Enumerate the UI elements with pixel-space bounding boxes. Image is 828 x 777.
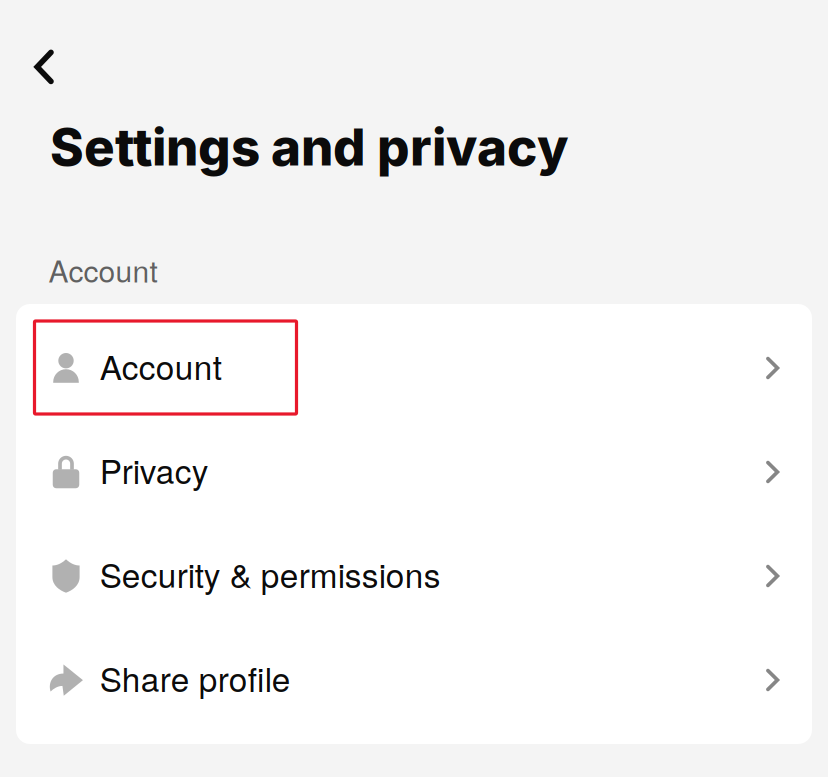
staticText: Settings and privacy xyxy=(50,116,569,178)
staticText: Security & permissions xyxy=(100,550,441,597)
button[interactable]: Security & permissions xyxy=(16,524,812,628)
staticText: Privacy xyxy=(100,446,209,493)
staticText: Account xyxy=(100,342,222,389)
staticText: Share profile xyxy=(100,654,291,701)
staticText: Account xyxy=(48,248,157,291)
button[interactable]: Share profile xyxy=(16,628,812,732)
button[interactable]: Privacy xyxy=(16,420,812,524)
button[interactable]: Account xyxy=(16,316,812,420)
button[interactable]: Back xyxy=(0,0,80,108)
